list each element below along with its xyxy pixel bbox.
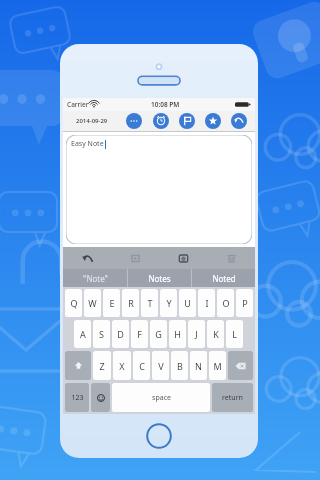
staticText: return bbox=[222, 393, 243, 403]
button[interactable]: Z bbox=[93, 351, 111, 380]
button[interactable]: Backspace bbox=[228, 351, 253, 380]
button[interactable]: Emoji bbox=[91, 383, 110, 412]
button[interactable]: Shift bbox=[65, 351, 91, 380]
staticText: U bbox=[184, 297, 191, 309]
button[interactable]: M bbox=[209, 351, 226, 380]
button[interactable]: Play bbox=[111, 247, 159, 269]
staticText: G bbox=[155, 328, 162, 340]
button[interactable]: Delete bbox=[207, 247, 255, 269]
staticText: V bbox=[158, 360, 164, 372]
button[interactable]: F bbox=[131, 320, 148, 348]
staticText: C bbox=[139, 360, 145, 372]
button[interactable]: K bbox=[207, 320, 224, 348]
staticText: D bbox=[117, 328, 124, 340]
button[interactable]: T bbox=[141, 289, 158, 317]
staticText: T bbox=[147, 297, 153, 309]
staticText: 2014-09-29 bbox=[76, 117, 108, 125]
button[interactable]: P bbox=[236, 289, 253, 317]
button[interactable]: Flag bbox=[174, 111, 200, 131]
staticText: E bbox=[109, 297, 115, 309]
button[interactable]: Notes bbox=[128, 269, 191, 287]
button[interactable]: L bbox=[226, 320, 243, 348]
staticText: space bbox=[152, 393, 171, 403]
staticText: "Note" bbox=[83, 273, 108, 284]
button[interactable]: A bbox=[74, 320, 91, 348]
button[interactable]: E bbox=[103, 289, 120, 317]
staticText: S bbox=[99, 328, 104, 340]
staticText: W bbox=[88, 297, 97, 309]
button[interactable]: Favourite bbox=[200, 111, 226, 131]
button[interactable]: S bbox=[93, 320, 110, 348]
staticText: M bbox=[213, 360, 222, 372]
button[interactable]: 2014-09-29 bbox=[66, 111, 118, 131]
staticText: L bbox=[232, 328, 237, 340]
button[interactable]: U bbox=[179, 289, 196, 317]
button[interactable]: Q bbox=[65, 289, 82, 317]
staticText: O bbox=[222, 297, 230, 309]
staticText: B bbox=[177, 360, 183, 372]
button[interactable]: return bbox=[212, 383, 253, 412]
button[interactable]: "Note" bbox=[63, 269, 127, 287]
staticText: Q bbox=[70, 297, 78, 309]
staticText: Noted bbox=[212, 273, 236, 284]
staticText: F bbox=[137, 328, 142, 340]
staticText: K bbox=[213, 328, 219, 340]
button[interactable]: J bbox=[188, 320, 205, 348]
staticText: Z bbox=[99, 360, 105, 372]
button[interactable]: N bbox=[190, 351, 207, 380]
button[interactable]: V bbox=[152, 351, 169, 380]
staticText: R bbox=[128, 297, 134, 309]
button[interactable]: Noted bbox=[192, 269, 255, 287]
button[interactable]: D bbox=[112, 320, 129, 348]
button[interactable]: 123 bbox=[65, 383, 89, 412]
button[interactable]: H bbox=[169, 320, 186, 348]
button[interactable]: W bbox=[84, 289, 101, 317]
button[interactable]: space bbox=[112, 383, 210, 412]
staticText: Notes bbox=[148, 273, 171, 284]
staticText: Y bbox=[166, 297, 172, 309]
staticText: N bbox=[195, 360, 202, 372]
staticText: A bbox=[80, 328, 86, 340]
button[interactable]: Easy Note bbox=[66, 135, 252, 244]
button[interactable]: G bbox=[150, 320, 167, 348]
staticText: P bbox=[242, 297, 248, 309]
button[interactable]: R bbox=[122, 289, 139, 317]
button[interactable]: Camera bbox=[159, 247, 207, 269]
staticText: I bbox=[205, 297, 209, 309]
staticText: Carrier bbox=[67, 100, 89, 109]
staticText: X bbox=[119, 360, 125, 372]
button[interactable]: Reminder bbox=[147, 111, 174, 131]
staticText: J bbox=[195, 328, 198, 340]
staticText: H bbox=[174, 328, 181, 340]
button[interactable]: Y bbox=[160, 289, 177, 317]
button[interactable]: More bbox=[120, 111, 147, 131]
button[interactable]: Undo bbox=[226, 111, 252, 131]
button[interactable]: B bbox=[171, 351, 188, 380]
staticText: 10:08 PM bbox=[151, 100, 180, 109]
button[interactable]: Undo bbox=[63, 247, 111, 269]
staticText: 123 bbox=[71, 393, 84, 403]
button[interactable]: X bbox=[113, 351, 131, 380]
button[interactable]: C bbox=[133, 351, 150, 380]
staticText: Easy Note bbox=[71, 139, 104, 149]
button[interactable]: I bbox=[198, 289, 215, 317]
button[interactable]: O bbox=[217, 289, 234, 317]
